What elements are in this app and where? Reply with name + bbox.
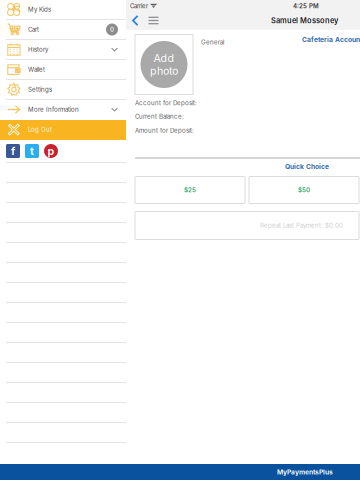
staticText: Cart [28,26,39,33]
staticText: Carrier [130,2,148,10]
button[interactable]: Cart [0,20,126,40]
button[interactable]: My Kids [0,0,126,20]
button[interactable]: Add [135,34,193,94]
staticText: photo [150,64,178,77]
button[interactable]: Menu [144,12,165,29]
staticText: 0 [110,26,114,33]
staticText: $50 [298,186,310,194]
button[interactable]: Repeat Last Payment: $0.00 [135,211,359,239]
staticText: Quick Choice [285,162,329,171]
staticText: MyPaymentsPlus [277,468,333,476]
staticText: t [30,144,34,157]
button[interactable]: Back [126,12,144,29]
staticText: Add [153,52,174,64]
button[interactable]: Pinterest [44,144,58,158]
staticText: Log Out [28,126,52,133]
staticText: $25 [184,186,196,194]
staticText: Account for Deposit: [135,99,197,107]
staticText: Current Balance: [135,113,184,120]
button[interactable]: More Information [0,100,126,120]
staticText: Repeat Last Payment: $0.00 [260,222,343,229]
staticText: More Information [28,106,79,113]
button[interactable]: $50 [249,176,359,203]
staticText: p [47,144,54,157]
button[interactable]: Facebook [6,144,20,158]
staticText: Samuel Mossoney [271,16,338,25]
staticText: Amount for Deposit: [135,127,194,134]
staticText: My Kids [28,6,51,13]
button[interactable]: Cafeteria Account [135,34,360,43]
staticText: History [28,46,48,53]
staticText: 4:25 PM [293,2,319,10]
button[interactable]: Twitter [25,144,39,158]
staticText: Wallet [28,66,45,73]
button[interactable]: History [0,40,126,60]
button[interactable]: $25 [135,176,245,203]
button[interactable]: Log Out [0,120,126,140]
button[interactable]: Wallet [0,60,126,80]
button[interactable]: Settings [0,80,126,100]
staticText: Settings [28,86,52,93]
staticText: Cafeteria Account [302,35,360,44]
staticText: f [11,144,15,157]
staticText: General [201,38,224,46]
